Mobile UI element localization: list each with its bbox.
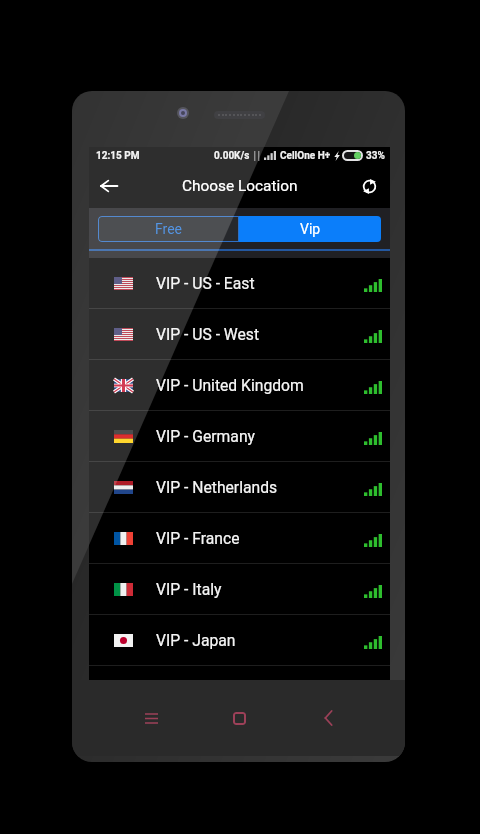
staticText: CellOne H+ [280,150,331,162]
button[interactable]: Refresh [352,169,386,203]
staticText: VIP - Japan [156,631,236,649]
button[interactable]: Back [92,169,126,203]
button[interactable]: Back [310,700,346,736]
staticText: VIP - Netherlands [156,478,278,496]
button[interactable]: VIP - Italy [89,564,390,614]
staticText: 33% [366,150,385,162]
button[interactable]: VIP - US - West [89,309,390,359]
staticText: VIP - France [156,529,240,547]
button[interactable]: VIP - Netherlands [89,462,390,512]
staticText: Vip [300,221,321,237]
staticText: VIP - US - East [156,274,255,292]
button[interactable]: Menu [133,700,169,736]
button[interactable]: Home [221,700,257,736]
button[interactable]: Vip [239,216,381,242]
button[interactable]: VIP - US - East [89,258,390,308]
button[interactable]: VIP - France [89,513,390,563]
staticText: 0.00K/s [214,150,250,162]
staticText: Free [155,221,183,237]
button[interactable]: Free [98,216,239,242]
staticText: VIP - US - West [156,325,260,343]
staticText: 12:15 PM [96,150,140,162]
staticText: Choose Location [182,177,298,195]
button[interactable]: VIP - Germany [89,411,390,461]
staticText: VIP - Germany [156,427,255,445]
staticText: VIP - Italy [156,580,222,598]
button[interactable]: VIP - Japan [89,615,390,665]
staticText: VIP - United Kingdom [156,376,304,394]
button[interactable]: VIP - United Kingdom [89,360,390,410]
